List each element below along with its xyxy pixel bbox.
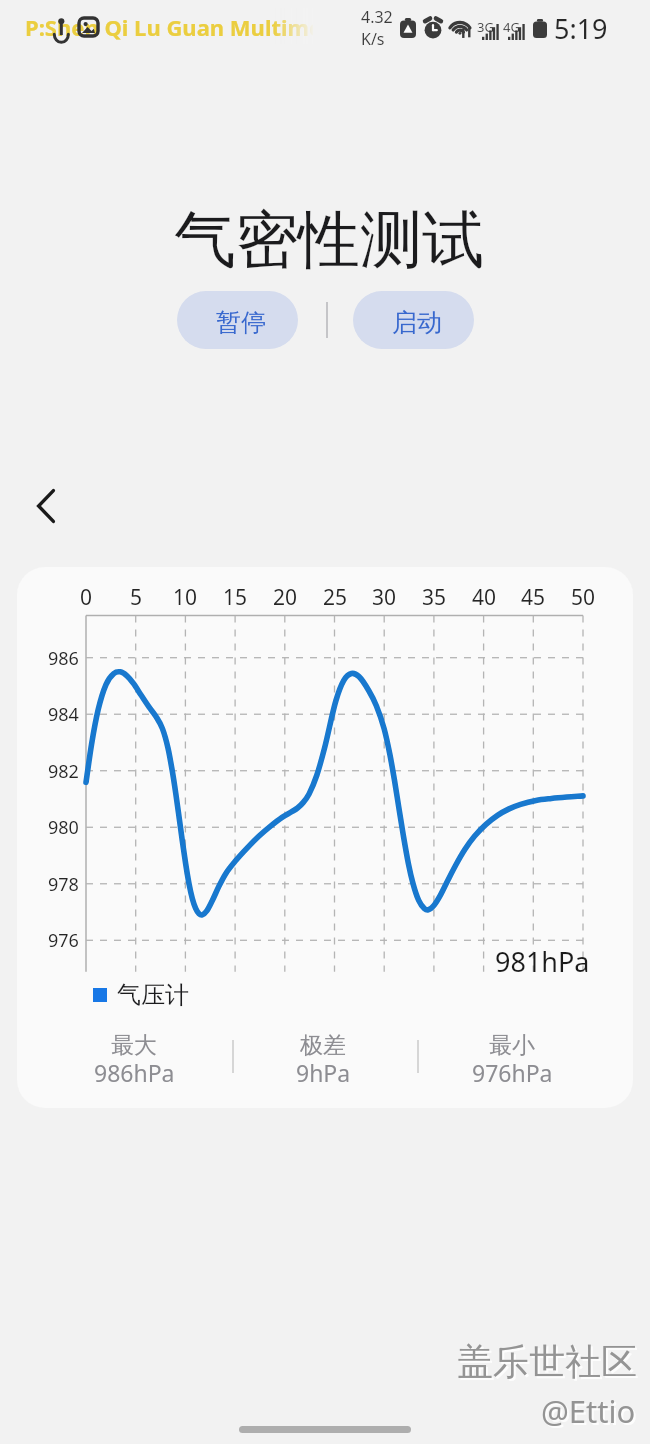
staticText: 35: [422, 583, 447, 612]
staticText: 986: [48, 646, 79, 671]
staticText: 9hPa: [296, 1057, 351, 1088]
staticText: 4G: [503, 18, 520, 36]
staticText: @Ettio: [541, 1390, 636, 1432]
staticText: 3G: [477, 18, 494, 36]
staticText: K/s: [361, 28, 385, 50]
staticText: 45: [521, 583, 546, 612]
staticText: 启动: [392, 307, 442, 338]
staticText: 气密性测试: [174, 201, 484, 279]
staticText: 50: [571, 583, 596, 612]
staticText: 10: [173, 583, 198, 612]
staticText: 暂停: [216, 307, 266, 338]
staticText: @Ettio: [543, 1392, 638, 1434]
button[interactable]: 启动: [353, 291, 474, 349]
staticText: 30: [372, 583, 397, 612]
button[interactable]: 暂停: [177, 291, 298, 349]
staticText: 盖乐世社区: [457, 1339, 637, 1384]
staticText: 4.32: [361, 6, 393, 28]
staticText: 20: [273, 583, 298, 612]
staticText: 40: [472, 583, 497, 612]
staticText: 极差: [300, 1031, 346, 1060]
staticText: 982: [48, 759, 79, 784]
staticText: 978: [48, 872, 79, 897]
staticText: 最大: [111, 1031, 157, 1060]
staticText: 15: [223, 583, 248, 612]
staticText: 5: [130, 583, 143, 612]
staticText: 976hPa: [472, 1057, 553, 1088]
staticText: 盖乐世社区: [459, 1341, 639, 1386]
button[interactable]: Back: [18, 478, 74, 534]
staticText: 5:19: [554, 10, 608, 47]
staticText: 981hPa: [495, 943, 590, 980]
staticText: 980: [48, 815, 79, 840]
staticText: 986hPa: [94, 1057, 175, 1088]
staticText: 气压计: [117, 980, 189, 1010]
staticText: 984: [48, 702, 79, 727]
staticText: 976: [48, 928, 79, 953]
staticText: 0: [80, 583, 93, 612]
staticText: 最小: [489, 1031, 535, 1060]
button[interactable]: 0: [17, 567, 633, 1108]
staticText: P:Shen Qi Lu Guan Multimedia: [25, 12, 313, 42]
staticText: 25: [323, 583, 348, 612]
